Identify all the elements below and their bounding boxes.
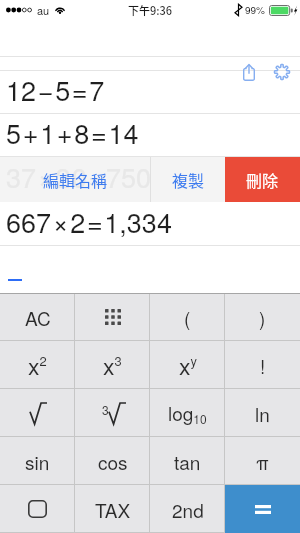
staticText: tan <box>174 448 201 475</box>
staticText: 刪除 <box>246 168 279 191</box>
staticText: cos <box>98 448 128 475</box>
button[interactable]: 刪除 <box>225 157 300 202</box>
button[interactable]: AC <box>0 293 75 341</box>
staticText: x3 <box>103 349 122 382</box>
button[interactable]: ( <box>150 293 225 341</box>
button[interactable]: ) <box>225 293 300 341</box>
button[interactable]: 複製 <box>151 157 225 202</box>
staticText: 2nd <box>172 496 204 523</box>
staticText: log10 <box>168 399 207 427</box>
button[interactable] <box>0 389 75 437</box>
button[interactable]: log10 <box>150 389 225 437</box>
staticText: x2 <box>28 349 47 382</box>
staticText: AC <box>25 304 51 331</box>
staticText: ) <box>259 304 266 331</box>
staticText: 99% <box>245 3 266 17</box>
staticText: 12 − 5 = 7 <box>6 70 105 109</box>
button[interactable]: 編輯名稱 <box>0 157 150 202</box>
button[interactable]: xy <box>150 341 225 389</box>
staticText: ! <box>260 352 266 379</box>
button[interactable]: x3 <box>75 341 150 389</box>
staticText: ln <box>255 400 270 427</box>
staticText: 667 × 2 = 1,334 <box>6 202 172 241</box>
button[interactable]: cos <box>75 437 150 485</box>
button[interactable]: ln <box>225 389 300 437</box>
staticText: 複製 <box>172 168 205 191</box>
button[interactable]: ! <box>225 341 300 389</box>
button[interactable] <box>225 485 300 533</box>
staticText: 編輯名稱 <box>43 168 108 191</box>
staticText: ( <box>184 304 191 331</box>
button[interactable]: 667 × 2 = 1,334 <box>0 202 300 246</box>
button[interactable]: π <box>225 437 300 485</box>
staticText: π <box>256 448 269 475</box>
button[interactable]: x2 <box>0 341 75 389</box>
staticText: 下午9:36 <box>128 2 173 18</box>
staticText: 5 + 1 + 8 = 14 <box>6 113 139 152</box>
staticText: au <box>37 2 50 18</box>
button[interactable]: Settings <box>269 61 295 83</box>
button[interactable]: 12 − 5 = 7 <box>0 71 300 114</box>
button[interactable]: tan <box>150 437 225 485</box>
button[interactable]: 2nd <box>150 485 225 533</box>
button[interactable] <box>0 485 75 533</box>
staticText: 3 <box>102 401 109 418</box>
button[interactable]: 5 + 1 + 8 = 14 <box>0 114 300 157</box>
staticText: xy <box>179 349 197 382</box>
button[interactable]: 3 <box>75 389 150 437</box>
button[interactable] <box>75 293 150 341</box>
staticText: TAX <box>95 496 131 523</box>
staticText: sin <box>25 448 50 475</box>
button[interactable]: Share <box>236 61 262 83</box>
staticText: 37 × 2 0 = 750 <box>6 157 152 196</box>
button[interactable]: sin <box>0 437 75 485</box>
button[interactable]: TAX <box>75 485 150 533</box>
